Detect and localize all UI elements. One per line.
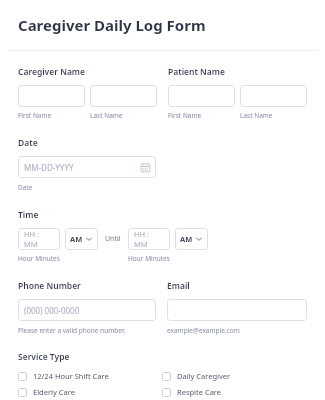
button[interactable]: Daily Caregiver [162,371,231,381]
staticText: Email [167,280,190,292]
staticText: Hour Minutes [18,254,128,263]
button[interactable]: MM-DD-YYYY [18,156,156,178]
staticText: Patient Name [168,66,225,78]
staticText: AM [180,234,193,244]
button[interactable] [90,85,157,107]
staticText: HH : MM [134,229,164,249]
staticText: Respite Care [177,387,222,397]
staticText: Caregiver Name [18,66,85,78]
staticText: Caregiver Daily Log Form [18,15,206,35]
staticText: Phone Number [18,280,81,292]
staticText: Hour Minutes [128,254,170,263]
button[interactable]: HH : MM [18,228,60,250]
button[interactable]: Elderly Care [18,387,162,397]
staticText: (000) 000-0000 [24,305,80,316]
button[interactable]: AM [175,228,208,250]
button[interactable]: AM [65,228,98,250]
staticText: Elderly Care [33,387,75,397]
staticText: First Name [168,111,240,120]
staticText: First Name [18,111,90,120]
button[interactable] [18,85,85,107]
button[interactable] [240,85,307,107]
button[interactable] [168,85,235,107]
staticText: MM-DD-YYYY [24,162,74,173]
staticText: 12/24 Hour Shift Care [33,371,109,381]
button[interactable] [167,299,307,321]
staticText: Date [18,137,38,149]
staticText: Service Type [18,351,70,363]
staticText: Please enter a valid phone number. [18,326,126,335]
staticText: HH : MM [24,229,54,249]
other: Open calendar [141,163,150,172]
staticText: Last Name [90,111,123,120]
button[interactable]: 12/24 Hour Shift Care [18,371,162,381]
staticText: Last Name [240,111,273,120]
staticText: Daily Caregiver [177,371,231,381]
button[interactable]: Respite Care [162,387,222,397]
staticText: Until [105,234,121,244]
staticText: Date [18,183,33,192]
staticText: AM [70,234,83,244]
button[interactable]: HH : MM [128,228,170,250]
staticText: Time [18,209,39,221]
staticText: example@example.com [167,326,240,335]
button[interactable]: (000) 000-0000 [18,299,156,321]
